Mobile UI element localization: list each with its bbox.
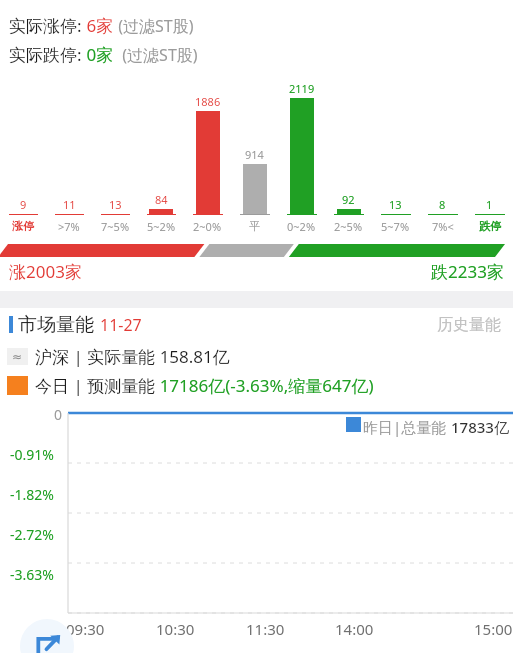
staticText: 914 [245, 147, 264, 162]
staticText: >7% [58, 219, 80, 234]
staticText: -0.91% [10, 445, 54, 464]
staticText: 0 [54, 405, 63, 424]
staticText: 1886 [195, 94, 221, 109]
staticText: 92 [342, 192, 355, 207]
button[interactable]: Share [20, 619, 74, 653]
staticText: 2119 [289, 81, 315, 96]
staticText: 历史量能 [437, 315, 501, 335]
staticText: 昨日|总量能 [363, 417, 451, 437]
staticText: 17833亿 [451, 417, 509, 437]
staticText: 实际涨停: [9, 14, 82, 37]
staticText: 84 [155, 192, 168, 207]
staticText: 涨2003家 [9, 260, 82, 283]
staticText: 6家 [82, 14, 114, 37]
staticText: 8 [439, 197, 446, 212]
staticText: 沪深 | 实际量能 158.81亿 [35, 345, 230, 368]
staticText: 5~7% [381, 219, 410, 234]
staticText: 5~2% [147, 219, 176, 234]
staticText: 10:30 [156, 619, 195, 639]
staticText: (过滤ST股) [114, 44, 198, 66]
staticText: (过滤ST股) [114, 15, 194, 37]
staticText: 13 [109, 197, 122, 212]
staticText: 7~5% [101, 219, 130, 234]
staticText: 1 [486, 197, 493, 212]
staticText: 今日 | 预测量能 17186亿(-3.63%,缩量647亿) [35, 374, 374, 397]
staticText: 14:00 [335, 619, 374, 639]
staticText: 11 [63, 197, 76, 212]
staticText: 11:30 [246, 619, 285, 639]
staticText: ≈ [12, 350, 23, 364]
staticText: 2~0% [193, 219, 222, 234]
staticText: 7%< [432, 219, 454, 234]
staticText: 涨停 [12, 219, 34, 233]
staticText: 09:30 [66, 619, 105, 639]
staticText: 平 [249, 219, 260, 233]
staticText: -2.72% [10, 525, 54, 544]
staticText: -3.63% [10, 565, 54, 584]
staticText: 11-27 [100, 314, 142, 336]
staticText: 跌停 [479, 219, 501, 233]
staticText: 实际跌停: [9, 43, 82, 66]
staticText: 15:00 [474, 619, 513, 639]
staticText: 9 [20, 197, 27, 212]
staticText: 跌2233家 [431, 260, 504, 283]
staticText: -1.82% [10, 485, 54, 504]
staticText: 2~5% [334, 219, 363, 234]
staticText: 13 [389, 197, 402, 212]
button[interactable]: 历史量能 [434, 312, 504, 338]
staticText: 0~2% [287, 219, 316, 234]
staticText: 市场量能 [18, 313, 94, 337]
staticText: 0家 [82, 43, 114, 66]
